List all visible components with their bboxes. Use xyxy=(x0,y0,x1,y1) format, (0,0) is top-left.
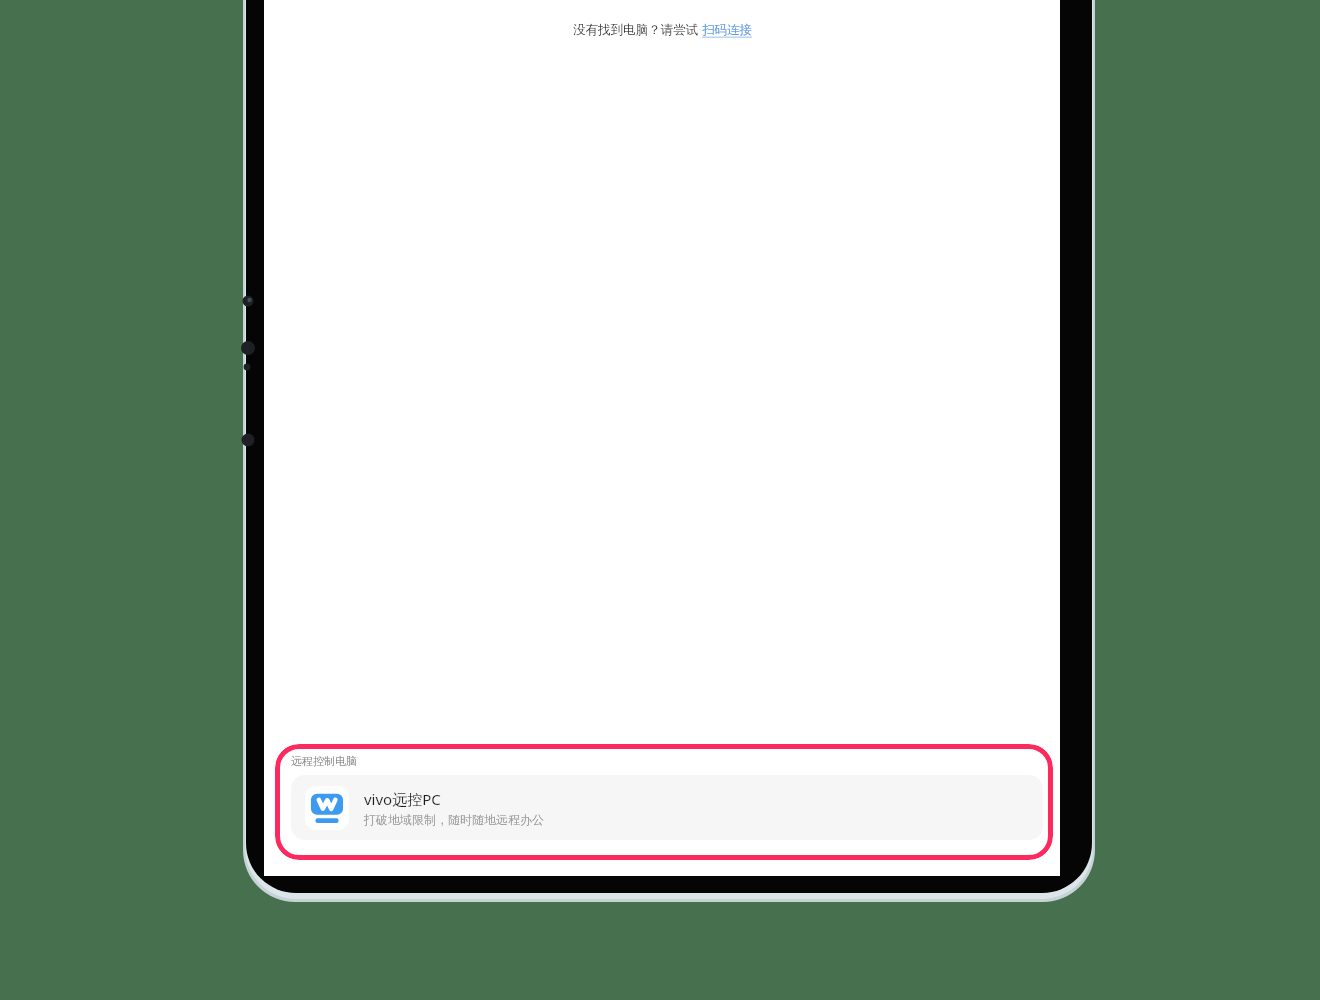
button[interactable]: 扫码连接 xyxy=(702,22,752,38)
staticText: 远程控制电脑 xyxy=(291,754,357,768)
staticText: vivo远控PC xyxy=(364,789,441,809)
staticText: 没有找到电脑？请尝试 xyxy=(573,21,702,38)
other: vivo远控PC xyxy=(305,786,349,830)
button[interactable]: vivo远控PC xyxy=(291,775,1043,840)
staticText: 打破地域限制，随时随地远程办公 xyxy=(364,812,544,827)
staticText: 扫码连接 xyxy=(702,22,752,38)
